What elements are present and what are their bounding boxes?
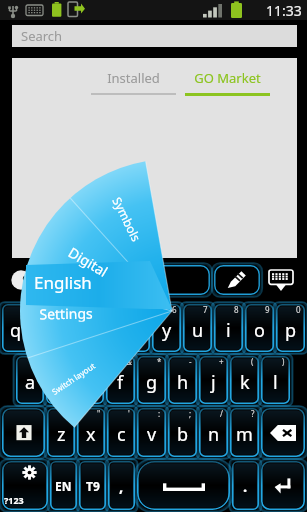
button[interactable]: Handwriting	[214, 265, 260, 295]
staticText: !	[68, 408, 71, 419]
button[interactable]: (	[230, 356, 259, 404]
staticText: 11:33	[266, 1, 302, 20]
staticText: Settings	[39, 303, 93, 322]
button[interactable]: Enter	[261, 461, 305, 510]
staticText: m	[236, 422, 253, 447]
staticText: k	[240, 370, 250, 395]
staticText: 1	[22, 304, 27, 315]
staticText: n	[208, 422, 220, 447]
button[interactable]: English	[34, 267, 110, 297]
staticText: -	[189, 356, 192, 367]
staticText: 7	[203, 304, 208, 315]
button[interactable]: ?	[230, 408, 259, 457]
button[interactable]: ,	[108, 461, 135, 510]
button[interactable]: 8	[214, 304, 243, 352]
staticText: e	[71, 318, 82, 343]
staticText: *	[157, 356, 162, 367]
staticText: y	[162, 318, 172, 343]
staticText: Installed	[107, 69, 160, 87]
button[interactable]: 5	[122, 304, 150, 352]
staticText: T9	[86, 478, 100, 494]
staticText: "	[97, 408, 101, 419]
button[interactable]: 3	[62, 304, 90, 352]
button[interactable]: -	[168, 356, 197, 404]
button[interactable]: '	[107, 408, 135, 457]
button[interactable]: 9	[245, 304, 274, 352]
button[interactable]: 2	[32, 304, 60, 352]
button[interactable]: &	[106, 356, 135, 404]
staticText: ?123	[4, 494, 24, 506]
button[interactable]: !	[47, 408, 75, 457]
button[interactable]: )	[261, 356, 290, 404]
button[interactable]: 4	[92, 304, 120, 352]
button[interactable]: 1	[2, 304, 30, 352]
button[interactable]: GO Market	[180, 58, 274, 100]
staticText: z	[57, 422, 66, 447]
staticText: +	[219, 356, 224, 367]
button[interactable]: *	[137, 356, 166, 404]
button[interactable]: Search	[12, 25, 297, 47]
staticText: s	[56, 370, 65, 395]
staticText: 2	[52, 304, 57, 315]
staticText: ,	[119, 476, 124, 496]
button[interactable]: 0	[276, 304, 305, 352]
staticText: v	[147, 422, 157, 447]
staticText: g	[146, 370, 158, 395]
staticText: Symbols	[109, 194, 145, 244]
button[interactable]: GO Keyboard menu	[5, 264, 37, 296]
button[interactable]: ;	[168, 408, 197, 457]
button[interactable]: 7	[183, 304, 212, 352]
button[interactable]: Settings	[30, 303, 102, 323]
staticText: o	[254, 318, 265, 343]
button[interactable]: T9	[79, 461, 106, 510]
staticText: 9	[265, 304, 270, 315]
staticText: '	[128, 408, 130, 419]
staticText: Digital	[65, 242, 111, 280]
button[interactable]: Symbols	[103, 183, 151, 255]
button[interactable]: "	[77, 408, 105, 457]
staticText: ;	[189, 408, 192, 419]
button[interactable]: Digital	[52, 235, 123, 287]
staticText: q	[10, 318, 22, 343]
staticText: ?	[251, 408, 255, 419]
button[interactable]: Space	[137, 461, 230, 510]
staticText: GO Market	[194, 69, 261, 87]
button[interactable]: English	[37, 265, 210, 295]
button[interactable]: Symbols and settings	[2, 461, 48, 510]
button[interactable]: Switch layout	[38, 350, 108, 406]
staticText: English	[34, 271, 92, 294]
button[interactable]: Installed	[86, 58, 180, 100]
staticText: p	[285, 318, 297, 343]
staticText: a	[25, 370, 36, 395]
staticText: x	[86, 422, 96, 447]
staticText: Switch layout	[49, 360, 97, 397]
staticText: d	[84, 370, 96, 395]
staticText: 5	[142, 304, 147, 315]
staticText: j	[211, 370, 216, 395]
staticText: :	[158, 408, 161, 419]
button[interactable]: Backspace	[261, 408, 305, 457]
staticText: English	[98, 270, 150, 290]
button[interactable]: #	[46, 356, 74, 404]
button[interactable]: Hide keyboard	[260, 264, 302, 296]
button[interactable]: @	[16, 356, 44, 404]
staticText: t	[133, 318, 140, 343]
button[interactable]: $	[76, 356, 104, 404]
button[interactable]: :	[137, 408, 166, 457]
staticText: 3	[82, 304, 87, 315]
button[interactable]: /	[199, 408, 228, 457]
button[interactable]: .	[232, 461, 259, 510]
staticText: #	[65, 356, 71, 367]
staticText: &	[126, 356, 132, 367]
staticText: f	[117, 370, 124, 395]
button[interactable]: +	[199, 356, 228, 404]
button[interactable]: 6	[152, 304, 181, 352]
button[interactable]: EN	[50, 461, 77, 510]
staticText: Search	[21, 27, 63, 45]
button[interactable]: Shift	[2, 408, 45, 457]
staticText: 8	[234, 304, 239, 315]
staticText: .	[243, 476, 248, 496]
staticText: /	[220, 408, 223, 419]
staticText: )	[282, 356, 285, 367]
